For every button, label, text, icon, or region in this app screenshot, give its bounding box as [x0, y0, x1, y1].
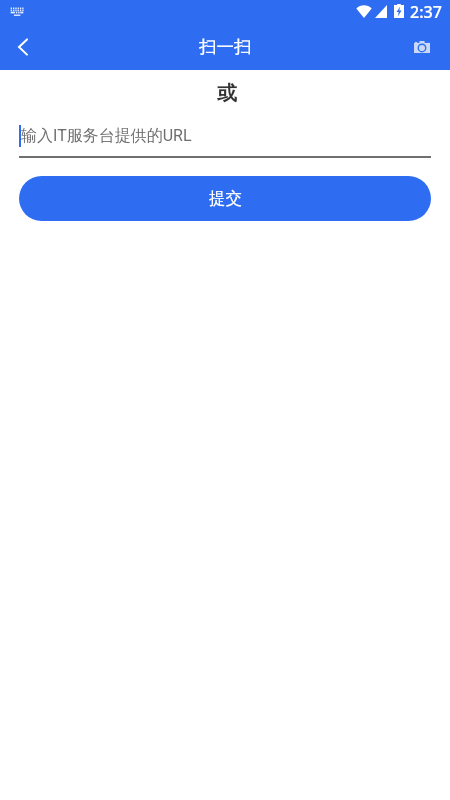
staticText: 扫一扫	[199, 36, 252, 58]
staticText: 2:37	[410, 1, 442, 23]
staticText: 提交	[209, 188, 242, 209]
staticText: 输入IT服务台提供的URL	[21, 126, 192, 146]
staticText: 或	[217, 81, 237, 106]
button[interactable]: 输入IT服务台提供的URL	[19, 120, 431, 158]
button[interactable]: Back	[0, 24, 46, 70]
button[interactable]: 提交	[19, 176, 431, 221]
button[interactable]: Camera	[402, 27, 442, 67]
